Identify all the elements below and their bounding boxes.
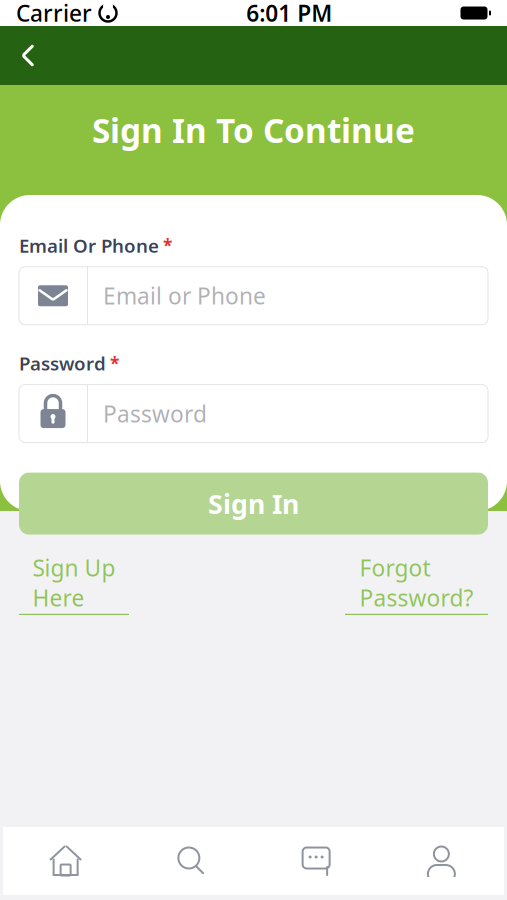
- button[interactable]: Sign Up Here: [19, 553, 129, 615]
- staticText: Password: [103, 398, 207, 429]
- button[interactable]: Back: [6, 33, 50, 77]
- button[interactable]: Email or Phone: [19, 267, 488, 325]
- staticText: Sign In: [208, 486, 299, 521]
- staticText: *: [110, 352, 119, 375]
- button[interactable]: Forgot Password?: [345, 553, 488, 615]
- staticText: Sign In To Continue: [92, 108, 415, 152]
- staticText: Email Or Phone: [19, 233, 159, 258]
- staticText: Sign Up Here: [32, 553, 115, 613]
- button[interactable]: Messages: [253, 827, 379, 895]
- staticText: Carrier: [16, 0, 92, 28]
- staticText: 6:01 PM: [246, 0, 332, 28]
- button[interactable]: Password: [19, 385, 488, 443]
- button[interactable]: Profile: [379, 827, 504, 895]
- staticText: *: [163, 234, 172, 257]
- button[interactable]: Search: [128, 827, 253, 895]
- button[interactable]: Home: [3, 827, 128, 895]
- staticText: Password: [19, 351, 106, 376]
- button[interactable]: Sign In: [19, 473, 488, 535]
- staticText: Forgot Password?: [359, 553, 473, 613]
- staticText: Email or Phone: [103, 281, 266, 311]
